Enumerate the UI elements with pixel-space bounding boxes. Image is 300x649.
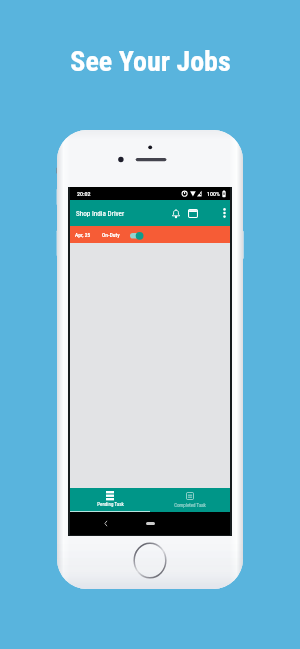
staticText: On-Duty [102, 232, 120, 238]
button[interactable]: Pending Task [70, 488, 150, 512]
button[interactable]: On duty toggle [127, 228, 145, 242]
staticText: Shop India Driver [76, 209, 125, 217]
staticText: See Your Jobs [70, 45, 231, 78]
button[interactable]: More options [217, 200, 231, 226]
staticText: Completed Task [174, 502, 206, 508]
button[interactable]: Notifications [166, 200, 185, 226]
staticText: 100% [207, 190, 220, 197]
button[interactable]: Home [146, 522, 155, 525]
staticText: 20:02 [77, 190, 91, 197]
staticText: Apr, 25 [75, 232, 91, 238]
button[interactable]: Completed Task [150, 488, 230, 512]
button[interactable]: Calendar [183, 200, 203, 226]
staticText: Pending Task [97, 501, 124, 507]
button[interactable]: Back [99, 512, 113, 535]
